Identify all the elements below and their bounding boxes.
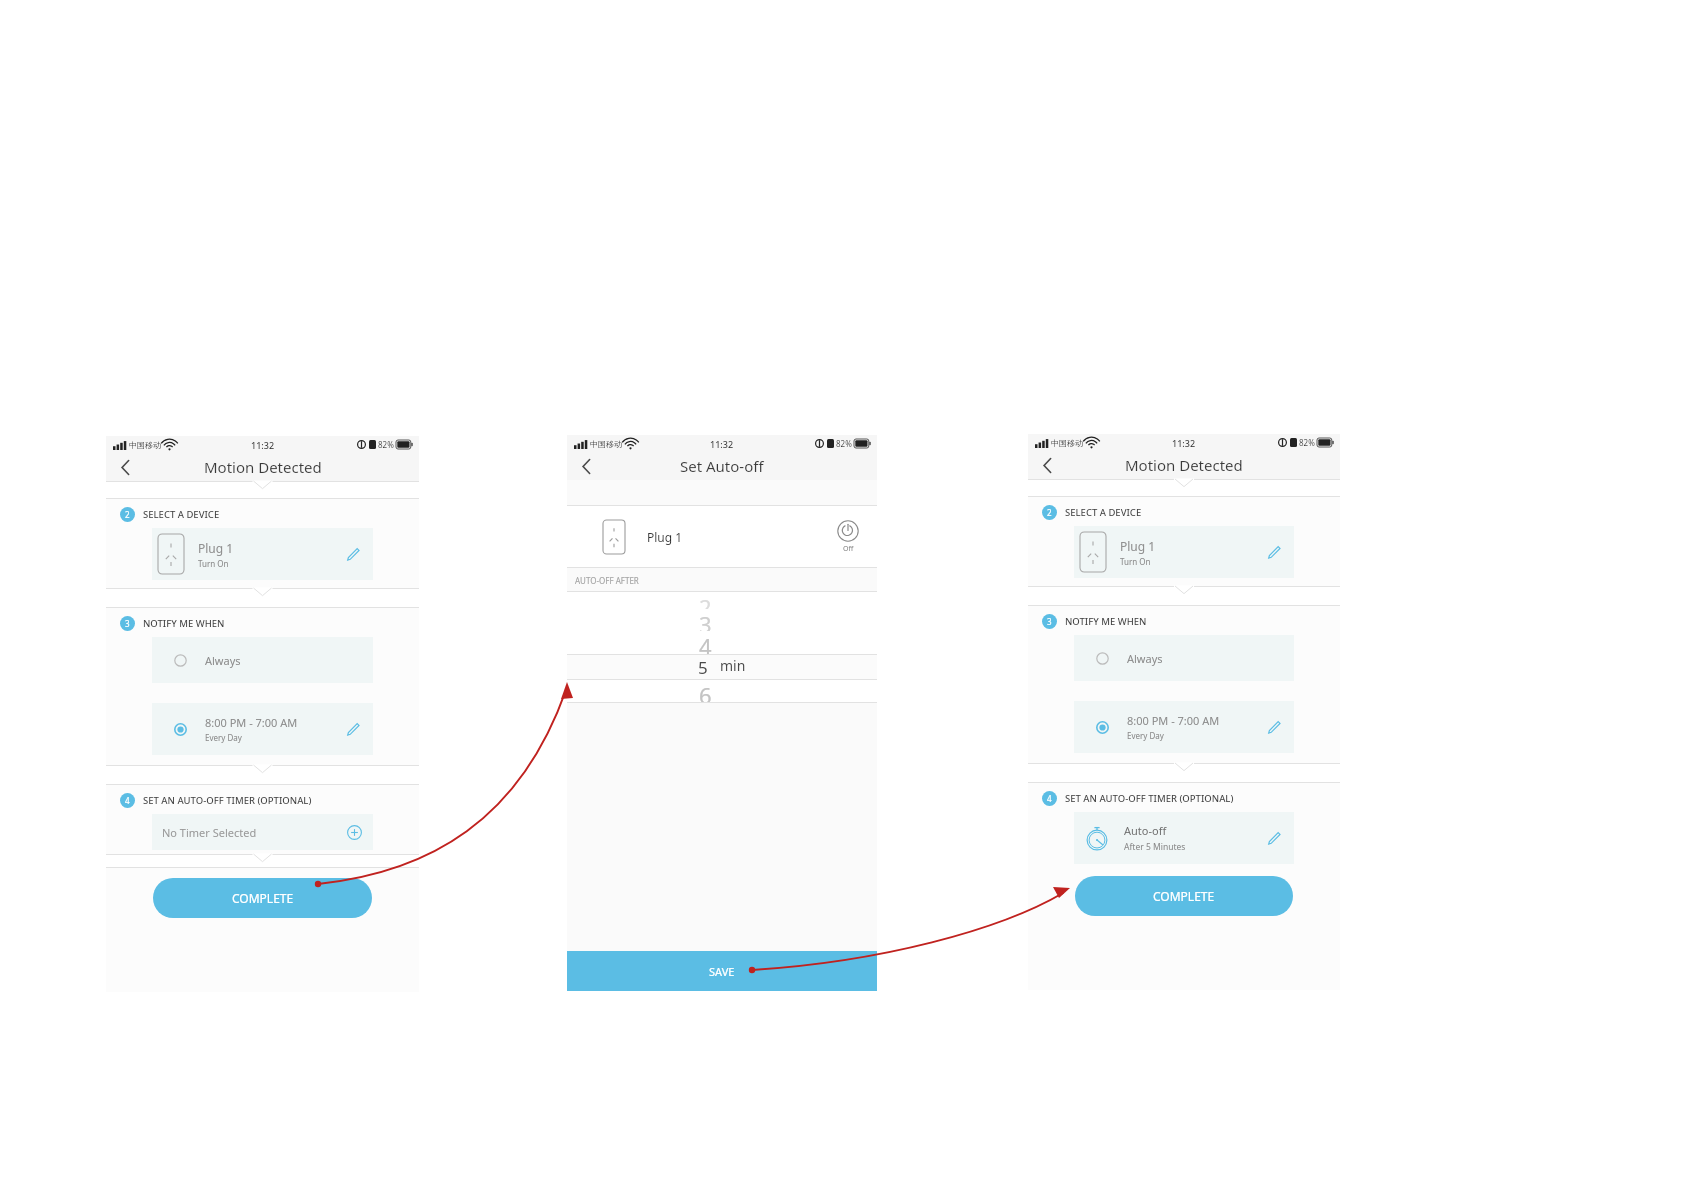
staticText: SAVE [709,964,735,979]
staticText: NOTIFY ME WHEN [1065,615,1147,628]
button[interactable]: COMPLETE [153,878,372,918]
staticText: 82% [1299,437,1315,448]
staticText: Every Day [1127,730,1164,741]
button[interactable]: No Timer Selected [152,814,373,850]
staticText: COMPLETE [232,890,294,906]
staticText: 4 [1047,793,1052,804]
staticText: SELECT A DEVICE [1065,506,1142,519]
button[interactable]: Plug 1 [567,506,877,568]
button[interactable]: 8:00 PM - 7:00 AM [152,703,373,755]
staticText: 8:00 PM - 7:00 AM [1127,713,1220,728]
staticText: After 5 Minutes [1124,841,1186,853]
staticText: NOTIFY ME WHEN [143,617,225,630]
button[interactable]: Plug 1 [152,528,373,580]
button[interactable]: COMPLETE [1075,876,1293,916]
staticText: SELECT A DEVICE [143,508,220,521]
staticText: Motion Detected [1125,455,1243,475]
button[interactable]: Edit schedule [343,719,363,739]
staticText: 5 [698,656,708,679]
button[interactable]: Back [1036,454,1058,476]
staticText: Motion Detected [204,457,322,477]
staticText: Off [843,544,854,554]
button[interactable]: Edit device [1264,542,1284,562]
button[interactable]: Always [152,637,373,683]
staticText: Always [205,653,241,668]
button[interactable]: SAVE [567,951,877,991]
staticText: 11:32 [1172,437,1196,449]
staticText: 82% [836,438,852,449]
staticText: Turn On [198,558,229,569]
button[interactable]: Back [114,456,136,478]
staticText: Plug 1 [198,540,234,556]
staticText: 6 [699,680,712,702]
button[interactable]: Edit auto-off timer [1264,828,1284,848]
staticText: AUTO-OFF AFTER [575,575,639,586]
staticText: COMPLETE [1153,888,1215,904]
button[interactable]: Edit schedule [1264,717,1284,737]
button[interactable]: Power toggle Off [837,520,859,554]
staticText: 中国移动 [590,439,622,449]
staticText: 4 [699,631,712,654]
staticText: No Timer Selected [162,825,345,840]
staticText: Plug 1 [1120,538,1156,554]
staticText: 3 [1047,616,1052,627]
staticText: 11:32 [251,439,275,451]
staticText: Plug 1 [647,529,837,545]
staticText: Every Day [205,732,242,743]
staticText: Turn On [1120,556,1151,567]
button[interactable]: Plug 1 [1074,526,1294,578]
staticText: 2 [125,509,130,520]
button[interactable]: Edit device [343,544,363,564]
staticText: Always [1127,651,1163,666]
staticText: 8:00 PM - 7:00 AM [205,715,298,730]
button[interactable]: 8:00 PM - 7:00 AM [1074,701,1294,753]
staticText: 3 [125,618,130,629]
staticText: SET AN AUTO-OFF TIMER (OPTIONAL) [1065,792,1234,805]
staticText: 3 [699,609,712,631]
staticText: 4 [125,795,130,806]
staticText: Auto-off [1124,823,1167,838]
staticText: 中国移动 [1051,438,1083,448]
button[interactable]: Add timer [345,823,363,841]
staticText: Set Auto-off [680,456,764,476]
staticText: 2 [699,592,712,609]
button[interactable]: Always [1074,635,1294,681]
staticText: 11:32 [710,438,734,450]
staticText: 2 [1047,507,1052,518]
button[interactable]: Back [575,455,597,477]
staticText: 82% [378,439,394,450]
staticText: SET AN AUTO-OFF TIMER (OPTIONAL) [143,794,312,807]
button[interactable]: Auto-off [1074,812,1294,864]
staticText: 中国移动 [129,440,161,450]
staticText: min [720,656,746,675]
